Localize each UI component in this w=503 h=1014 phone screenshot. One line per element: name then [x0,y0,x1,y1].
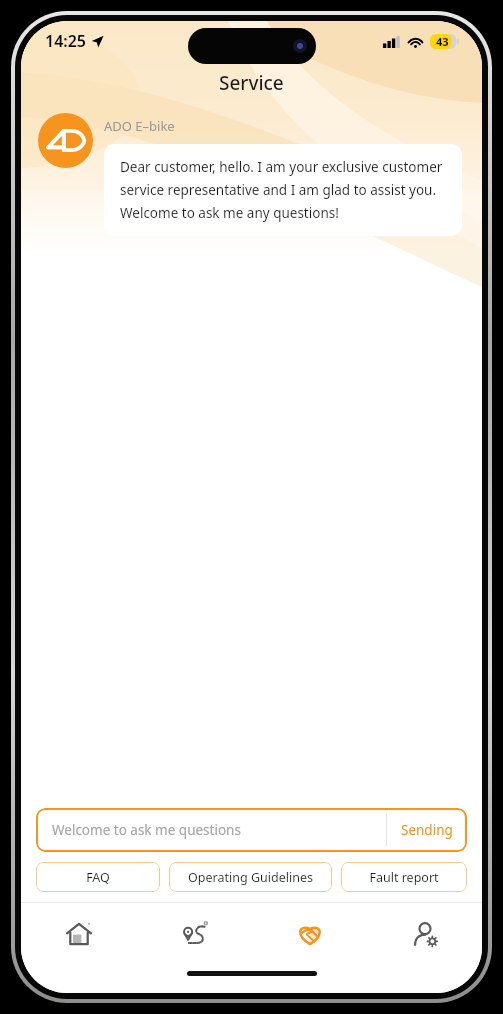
staticText: Service [219,70,284,96]
button[interactable]: Fault report [341,862,467,892]
staticText: Dear customer, hello. I am your exclusiv… [120,158,446,222]
staticText: Operating Guidelines [188,869,313,886]
button[interactable]: FAQ [36,862,160,892]
staticText: ADO E–bike [104,117,175,135]
button[interactable]: Welcome to ask me questions [36,808,467,852]
staticText: 14:25 [45,30,87,52]
button[interactable]: Sending [387,811,467,849]
button[interactable]: Home [21,903,137,965]
staticText: Sending [401,821,453,839]
staticText: 43 [436,34,449,49]
button[interactable]: Service [252,903,367,965]
button[interactable]: Profile [367,903,482,965]
staticText: FAQ [86,869,110,886]
button[interactable]: Dear customer, hello. I am your exclusiv… [104,144,462,236]
staticText: Fault report [369,869,439,886]
button[interactable]: Operating Guidelines [169,862,332,892]
button[interactable]: Routes [137,903,252,965]
staticText: Welcome to ask me questions [52,821,241,839]
